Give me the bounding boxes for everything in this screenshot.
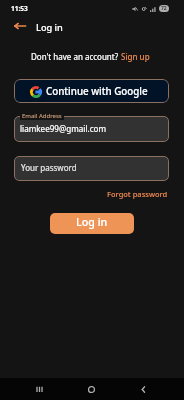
button[interactable]: Back (7, 16, 33, 38)
staticText: 11:53 (11, 4, 28, 13)
staticText: Forgot password (107, 189, 168, 199)
button[interactable]: Your password (14, 156, 169, 181)
button[interactable]: Continue with Google (14, 79, 169, 103)
staticText: Email Address (22, 112, 62, 120)
button[interactable]: Sign up (121, 51, 150, 62)
staticText: liamkee99@gmail.com (20, 123, 107, 134)
staticText: Don't have an account? (31, 51, 121, 62)
staticText: Your password (21, 162, 77, 173)
button[interactable]: Forgot password (107, 189, 168, 199)
button[interactable]: Back (130, 378, 156, 400)
staticText: 72 (161, 5, 167, 12)
staticText: Sign up (121, 51, 150, 62)
staticText: Continue with Google (46, 85, 148, 98)
button[interactable]: Log in (50, 213, 134, 234)
button[interactable]: Home (78, 378, 104, 400)
staticText: Log in (36, 21, 63, 34)
button[interactable]: Recents (26, 378, 52, 400)
staticText: Log in (76, 215, 108, 230)
button[interactable]: liamkee99@gmail.com (14, 116, 169, 142)
